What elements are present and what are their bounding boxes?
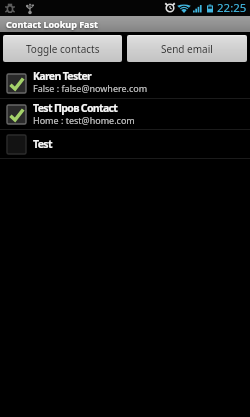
button[interactable]: Selected contact [0,67,250,99]
staticText: Karen Tester [33,69,92,83]
button[interactable]: Send email [127,35,247,62]
staticText: Toggle contacts [26,42,100,56]
staticText: 22:25 [217,0,247,16]
button[interactable]: Unselected contact [0,130,250,159]
staticText: False : false@nowhere.com [33,82,148,94]
staticText: Test Пров Contact [33,101,118,115]
staticText: Send email [161,42,213,56]
staticText: Contact Lookup Fast [6,18,98,30]
button[interactable]: Selected contact [0,99,250,130]
button[interactable]: Toggle contacts [3,35,122,62]
staticText: Home : test@home.com [33,114,135,126]
button[interactable]: Unselected contact [6,134,27,155]
staticText: Test [33,137,52,151]
button[interactable]: Selected contact [6,104,27,125]
button[interactable]: Selected contact [6,73,27,94]
